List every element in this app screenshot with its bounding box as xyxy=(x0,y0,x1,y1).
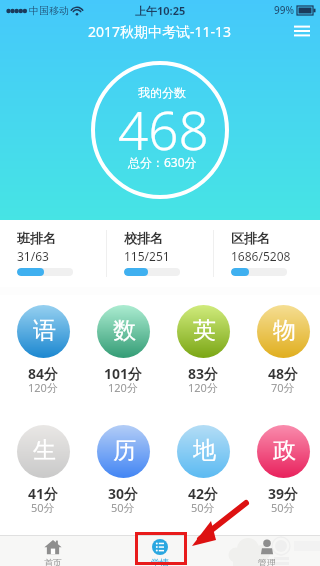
button[interactable]: 政 xyxy=(243,415,320,535)
staticText: 50分 xyxy=(111,500,135,515)
staticText: 总分：630分 xyxy=(128,154,197,170)
button[interactable]: 管理 xyxy=(213,535,320,566)
staticText: 41分 xyxy=(28,484,59,503)
staticText: 120分 xyxy=(28,380,58,395)
staticText: 101分 xyxy=(104,364,143,383)
staticText: 物 xyxy=(273,316,296,345)
button[interactable]: 班排名 xyxy=(0,220,106,287)
staticText: 31/63 xyxy=(17,248,49,264)
staticText: 468 xyxy=(118,93,209,165)
button[interactable]: 生 xyxy=(3,415,83,535)
button[interactable]: Menu xyxy=(292,21,312,41)
button[interactable]: 语 xyxy=(3,295,83,415)
staticText: 2017秋期中考试-11-13 xyxy=(88,22,232,41)
staticText: 50分 xyxy=(191,500,215,515)
staticText: 历 xyxy=(113,436,136,465)
staticText: 50分 xyxy=(31,500,55,515)
staticText: 数 xyxy=(113,316,136,345)
button[interactable]: 区排名 xyxy=(214,220,320,287)
staticText: 上午10:25 xyxy=(135,3,186,18)
staticText: 管理 xyxy=(258,557,276,566)
staticText: 120分 xyxy=(108,380,138,395)
button[interactable]: 英 xyxy=(163,295,243,415)
button[interactable]: 首页 xyxy=(0,535,106,566)
staticText: 学情 xyxy=(151,557,169,566)
staticText: 120分 xyxy=(188,380,218,395)
staticText: 校排名 xyxy=(124,230,163,246)
staticText: 中国移动 xyxy=(29,4,69,17)
button[interactable]: 校排名 xyxy=(107,220,213,287)
staticText: 1686/5208 xyxy=(231,248,291,264)
button[interactable]: 物 xyxy=(243,295,320,415)
staticText: 70分 xyxy=(271,380,295,395)
staticText: 语 xyxy=(33,316,56,345)
staticText: 班排名 xyxy=(17,230,56,246)
staticText: 我的分数 xyxy=(138,85,186,100)
staticText: 83分 xyxy=(188,364,219,383)
staticText: 地 xyxy=(193,436,216,465)
staticText: 39分 xyxy=(268,484,299,503)
staticText: 50分 xyxy=(271,500,295,515)
staticText: 42分 xyxy=(188,484,219,503)
staticText: 48分 xyxy=(268,364,299,383)
staticText: 首页 xyxy=(44,557,62,566)
staticText: 生 xyxy=(33,436,56,465)
button[interactable]: 历 xyxy=(83,415,163,535)
staticText: 30分 xyxy=(108,484,139,503)
button[interactable]: 地 xyxy=(163,415,243,535)
staticText: 英 xyxy=(193,316,216,345)
staticText: 区排名 xyxy=(231,230,270,246)
staticText: 99% xyxy=(274,3,294,17)
staticText: 115/251 xyxy=(124,248,170,264)
button[interactable]: 学情 xyxy=(106,535,213,566)
button[interactable]: 数 xyxy=(83,295,163,415)
staticText: 84分 xyxy=(28,364,59,383)
staticText: 政 xyxy=(273,436,296,465)
